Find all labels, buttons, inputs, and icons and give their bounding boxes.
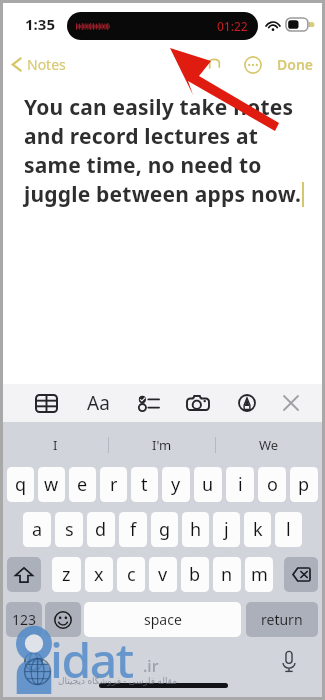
button[interactable]: Shift (7, 557, 41, 592)
button[interactable]: s (55, 512, 83, 547)
button[interactable]: Undo (203, 53, 225, 75)
button[interactable]: w (38, 467, 65, 502)
staticText: Aa (87, 390, 110, 416)
staticText: e (77, 472, 88, 497)
staticText: u (202, 472, 214, 497)
button[interactable]: h (182, 512, 209, 547)
staticText: .ir (143, 655, 159, 677)
button[interactable]: b (181, 557, 209, 592)
staticText: space (144, 610, 182, 629)
staticText: Notes (27, 55, 66, 74)
staticText: I (53, 436, 58, 454)
button[interactable]: g (151, 512, 178, 547)
button[interactable]: y (162, 467, 190, 502)
staticText: y (171, 472, 181, 497)
button[interactable]: f (119, 512, 147, 547)
button[interactable]: space (84, 602, 241, 637)
staticText: same time, no need to (24, 151, 262, 180)
button[interactable]: I (3, 422, 108, 467)
staticText: We (259, 436, 279, 454)
button[interactable]: m (245, 557, 273, 592)
button[interactable]: r (100, 467, 127, 502)
button[interactable]: Markup (230, 384, 264, 422)
button[interactable]: x (85, 557, 113, 592)
staticText: 123 (12, 610, 37, 629)
button[interactable]: e (69, 467, 96, 502)
staticText: c (127, 562, 136, 587)
staticText: z (62, 562, 71, 587)
staticText: idat (50, 627, 133, 692)
staticText: k (253, 517, 263, 542)
button[interactable]: z (52, 557, 81, 592)
button[interactable]: Checklist (131, 384, 165, 422)
button[interactable]: Notes (11, 55, 66, 74)
button[interactable]: u (194, 467, 222, 502)
button[interactable]: More (240, 52, 265, 77)
button[interactable]: Done (274, 49, 317, 80)
staticText: You can easily take notes (24, 93, 294, 122)
button[interactable]: Table (29, 384, 63, 422)
staticText: 1:35 (25, 14, 55, 34)
button[interactable]: t (131, 467, 158, 502)
button[interactable]: i (226, 467, 254, 502)
button[interactable]: p (290, 467, 318, 502)
button[interactable]: k (244, 512, 271, 547)
button[interactable]: Camera (181, 384, 215, 422)
staticText: Done (277, 55, 314, 74)
staticText: j (224, 517, 229, 542)
button[interactable]: c (117, 557, 145, 592)
staticText: t (141, 472, 148, 497)
button[interactable]: a (23, 512, 51, 547)
staticText: I'm (152, 436, 172, 454)
button[interactable]: Close keyboard (274, 384, 308, 422)
button[interactable]: Text format (81, 384, 115, 422)
button[interactable]: Dictate (275, 647, 303, 675)
staticText: h (190, 517, 202, 542)
staticText: i (238, 472, 243, 497)
staticText: x (94, 562, 104, 587)
staticText: s (65, 517, 74, 542)
button[interactable]: Backspace (284, 557, 318, 592)
staticText: q (15, 472, 27, 497)
button[interactable]: v (149, 557, 177, 592)
staticText: f (130, 517, 137, 542)
button[interactable]: return (246, 602, 318, 637)
staticText: m (251, 562, 268, 587)
staticText: and record lectures at (24, 122, 259, 151)
staticText: a (32, 517, 43, 542)
staticText: d (95, 517, 107, 542)
staticText: o (267, 472, 278, 497)
staticText: w (44, 472, 59, 497)
staticText: l (286, 517, 291, 542)
staticText: b (189, 562, 201, 587)
button[interactable]: 123 (6, 602, 42, 637)
button[interactable]: I'm (109, 422, 215, 467)
staticText: مقاله فارسی - فروشگاه دیجیتال (58, 674, 177, 686)
staticText: g (159, 517, 171, 542)
button[interactable]: We (216, 422, 322, 467)
button[interactable]: l (275, 512, 302, 547)
button[interactable]: q (7, 467, 34, 502)
button[interactable]: o (258, 467, 286, 502)
button[interactable]: Emoji (45, 602, 81, 637)
staticText: 01:22 (217, 18, 248, 34)
staticText: return (261, 610, 303, 629)
staticText: n (221, 562, 233, 587)
staticText: p (298, 472, 310, 497)
staticText: v (158, 562, 168, 587)
button[interactable]: Next keyboard (19, 647, 47, 675)
button[interactable]: j (213, 512, 240, 547)
staticText: juggle between apps now. (24, 180, 302, 209)
button[interactable]: d (87, 512, 115, 547)
staticText: r (110, 472, 118, 497)
button[interactable]: n (213, 557, 241, 592)
